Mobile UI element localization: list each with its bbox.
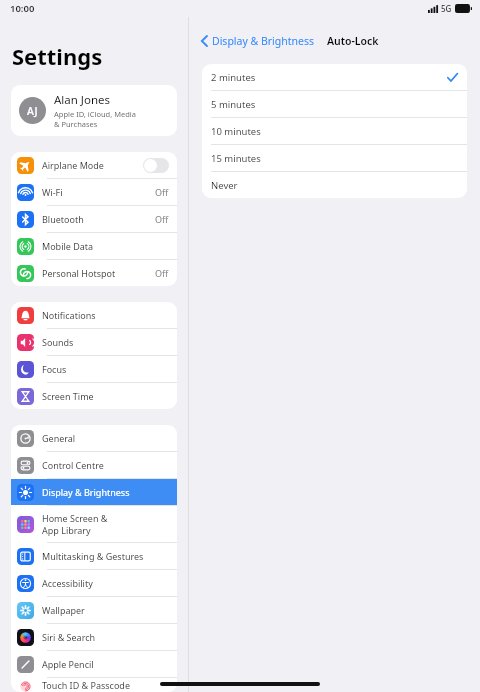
staticText: Bluetooth [42,213,84,225]
staticText: AJ [27,104,38,118]
staticText: App Library [42,524,91,536]
button[interactable]: Personal Hotspot [11,260,177,286]
button[interactable]: Notifications [11,302,177,328]
staticText: Wi-Fi [42,186,63,198]
staticText: Siri & Search [42,631,96,643]
staticText: Apple Pencil [42,658,94,670]
staticText: Multitasking & Gestures [42,550,144,562]
staticText: Focus [42,363,67,375]
staticText: 15 minutes [211,152,458,165]
staticText: Auto-Lock [327,34,379,48]
button[interactable]: Sounds [11,329,177,355]
staticText: Airplane Mode [42,159,104,171]
staticText: Accessibility [42,577,93,589]
staticText: Never [211,179,458,192]
button[interactable]: 2 minutes [202,64,467,90]
staticText: 10:00 [10,2,35,15]
button[interactable]: Multitasking & Gestures [11,543,177,569]
staticText: General [42,432,76,444]
staticText: 10 minutes [211,125,458,138]
staticText: Alan Jones [54,92,111,108]
button[interactable]: AJ [11,85,177,136]
button[interactable]: Never [202,172,467,198]
button[interactable]: 10 minutes [202,118,467,144]
staticText: Personal Hotspot [42,267,116,279]
staticText: Screen Time [42,390,94,402]
staticText: Off [155,213,169,225]
staticText: Mobile Data [42,240,94,252]
button[interactable]: 15 minutes [202,145,467,171]
button[interactable]: Screen Time [11,383,177,409]
staticText: Touch ID & Passcode [42,679,130,691]
staticText: Off [155,186,169,198]
staticText: & Purchases [54,119,98,129]
staticText: Home Screen & [42,512,108,524]
button[interactable]: Accessibility [11,570,177,596]
staticText: Wallpaper [42,604,85,616]
button[interactable]: General [11,425,177,451]
staticText: Settings [12,41,103,71]
staticText: Apple ID, iCloud, Media [54,109,136,119]
button[interactable]: Display & Brightness [11,479,177,505]
button[interactable]: Touch ID & Passcode [11,678,177,692]
staticText: Display & Brightness [212,34,315,48]
button[interactable]: Home Screen & [11,506,177,542]
staticText: Display & Brightness [42,486,130,498]
button[interactable]: Mobile Data [11,233,177,259]
staticText: Off [155,267,169,279]
button[interactable]: Wallpaper [11,597,177,623]
button[interactable]: Airplane Mode [11,152,177,178]
staticText: 5G [441,3,452,14]
button[interactable]: Display & Brightness [197,31,319,51]
button[interactable]: Control Centre [11,452,177,478]
button[interactable]: Siri & Search [11,624,177,650]
button[interactable]: Airplane Mode toggle [143,158,169,173]
staticText: Sounds [42,336,74,348]
button[interactable]: Bluetooth [11,206,177,232]
button[interactable]: Apple Pencil [11,651,177,677]
button[interactable]: Focus [11,356,177,382]
staticText: Notifications [42,309,96,321]
button[interactable]: Wi-Fi [11,179,177,205]
button[interactable]: 5 minutes [202,91,467,117]
staticText: 5 minutes [211,98,458,111]
staticText: 2 minutes [211,71,447,84]
staticText: Control Centre [42,459,104,471]
